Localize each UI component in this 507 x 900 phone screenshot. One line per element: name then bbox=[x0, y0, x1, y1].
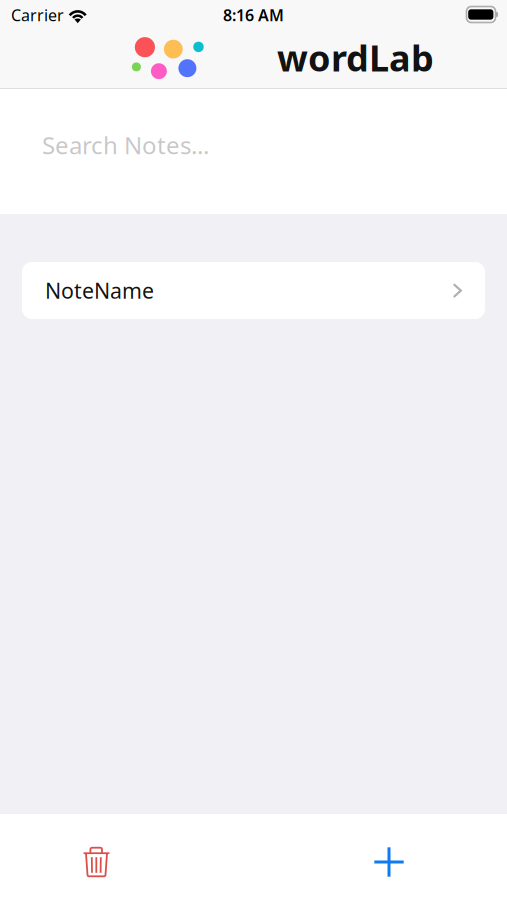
button[interactable]: Search Notes... bbox=[0, 89, 507, 214]
staticText: wordLab bbox=[277, 34, 434, 81]
staticText: Search Notes... bbox=[42, 129, 209, 161]
button[interactable]: Delete note bbox=[64, 831, 128, 893]
staticText: Carrier bbox=[11, 4, 64, 26]
staticText: NoteName bbox=[45, 276, 154, 304]
staticText: 8:16 AM bbox=[223, 4, 284, 26]
button[interactable]: Add note bbox=[357, 831, 421, 893]
button[interactable]: NoteName bbox=[22, 262, 485, 319]
